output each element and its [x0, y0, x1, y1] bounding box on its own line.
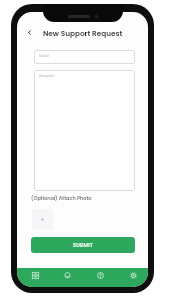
staticText: (Optional) Attach Photo	[31, 195, 92, 202]
button[interactable]: Back	[22, 25, 37, 40]
staticText: New Support Request	[43, 28, 123, 38]
button[interactable]: SUBMIT	[31, 237, 135, 253]
button[interactable]: Dashboard	[17, 268, 49, 287]
button[interactable]: Attach photo	[32, 209, 53, 230]
button[interactable]: Description	[34, 70, 135, 191]
button[interactable]: Subject	[34, 50, 135, 64]
staticText: Description	[39, 74, 55, 78]
button[interactable]: Settings	[115, 268, 148, 287]
button[interactable]: Help	[82, 268, 115, 287]
staticText: SUBMIT	[73, 242, 93, 249]
staticText: Subject	[39, 54, 50, 58]
button[interactable]: Notifications	[49, 268, 82, 287]
